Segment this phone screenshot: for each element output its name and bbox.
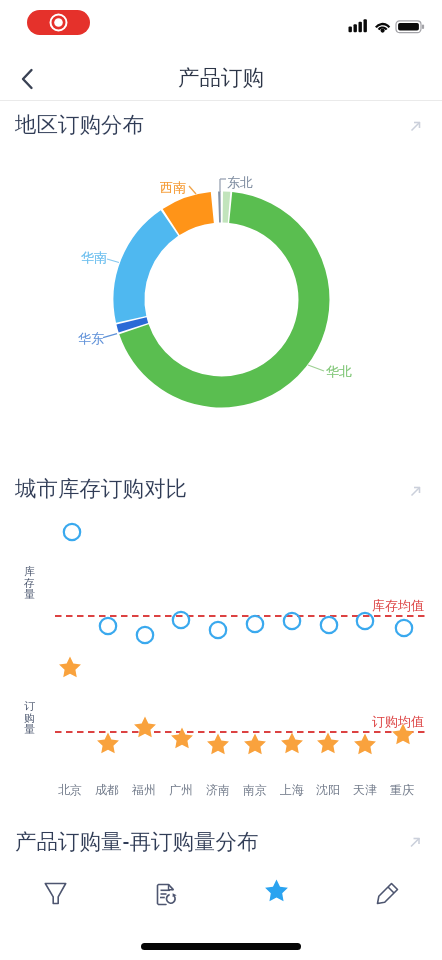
staticText: 南京 <box>243 782 267 797</box>
staticText: 库 存 量 <box>24 564 35 601</box>
button[interactable] <box>27 10 90 35</box>
staticText: 产品订购量-再订购量分布 <box>15 826 259 855</box>
staticText: 沈阳 <box>316 782 340 797</box>
staticText: 天津 <box>353 782 377 797</box>
staticText: 华南 <box>81 249 107 265</box>
staticText: 华东 <box>78 330 104 346</box>
staticText: 城市库存订购对比 <box>15 475 187 502</box>
staticText: 上海 <box>280 782 304 797</box>
staticText: 东北 <box>227 174 253 190</box>
button[interactable] <box>220 862 331 924</box>
button[interactable] <box>331 862 442 924</box>
staticText: 成都 <box>95 782 119 797</box>
staticText: 北京 <box>58 782 82 797</box>
staticText: 西南 <box>160 179 186 195</box>
button[interactable] <box>110 862 220 924</box>
staticText: 济南 <box>206 782 230 797</box>
staticText: 地区订购分布 <box>15 111 144 138</box>
staticText: 福州 <box>132 782 156 797</box>
staticText: 订购均值 <box>372 713 424 729</box>
button[interactable] <box>0 106 442 142</box>
staticText: 订 购 量 <box>24 699 35 736</box>
button[interactable] <box>0 862 110 924</box>
staticText: 广州 <box>169 782 193 797</box>
button[interactable] <box>8 57 52 101</box>
button[interactable] <box>0 822 442 858</box>
staticText: 重庆 <box>390 782 414 797</box>
button[interactable] <box>0 470 442 506</box>
staticText: 库存均值 <box>372 597 424 613</box>
staticText: 产品订购 <box>178 64 264 91</box>
staticText: 华北 <box>326 363 352 379</box>
